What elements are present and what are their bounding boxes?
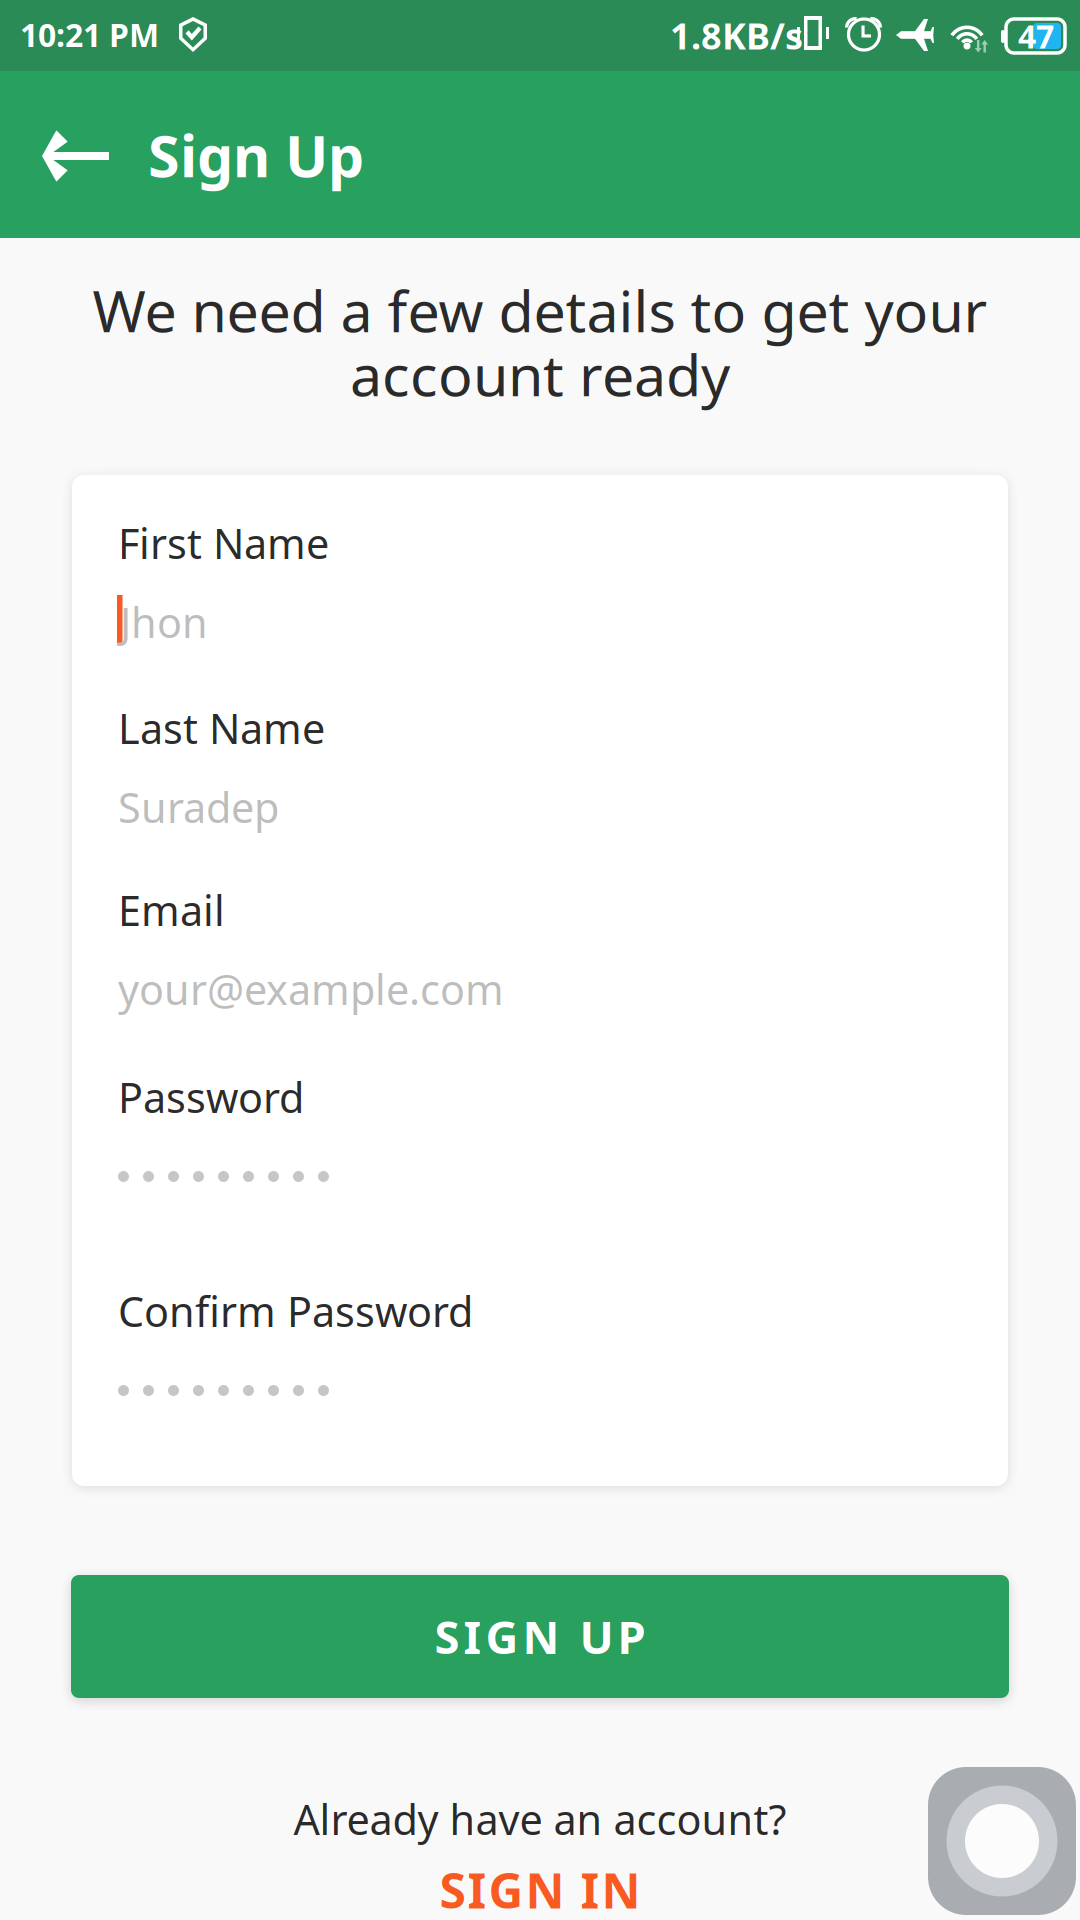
staticText: 1.8KB/s [670,12,803,59]
button[interactable]: Password [118,1062,962,1224]
button[interactable]: First Name [118,508,962,660]
staticText: Jhon [120,595,208,649]
button[interactable]: Email [118,875,962,1027]
staticText: Sign Up [148,117,364,193]
button[interactable]: Assistive touch [928,1767,1076,1915]
staticText: Suradep [118,780,279,834]
staticText: Confirm Password [118,1284,473,1338]
staticText: SIGN UP [434,1606,645,1667]
button[interactable]: SIGN UP [71,1575,1009,1698]
staticText: your@example.com [118,962,504,1016]
staticText: We need a few details to get your [92,272,987,348]
staticText: First Name [118,516,329,570]
staticText: Email [118,883,225,937]
staticText: Last Name [118,701,325,755]
staticText: SIGN IN [439,1858,640,1920]
staticText: 10:21 PM [20,13,159,56]
button[interactable]: Confirm Password [118,1276,962,1438]
staticText: 47 [1018,15,1054,57]
button[interactable]: SIGN IN [0,1861,1080,1919]
button[interactable]: Last Name [118,693,962,845]
staticText: account ready [350,336,730,412]
button[interactable]: Back [20,100,132,212]
staticText: Password [118,1070,304,1124]
staticText: Already have an account? [293,1792,786,1846]
